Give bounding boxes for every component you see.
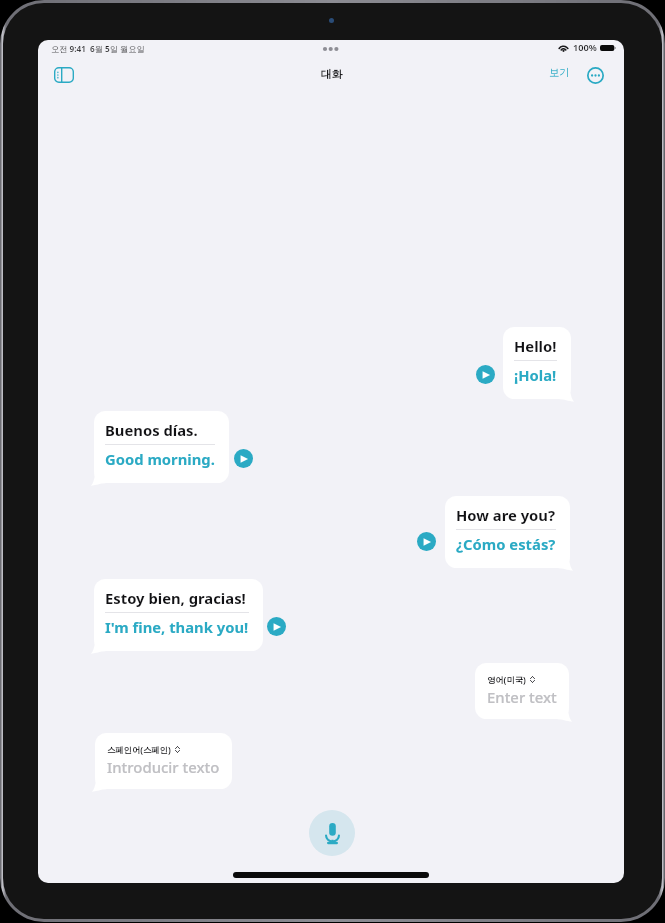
staticText: Buenos días.	[105, 420, 198, 440]
staticText: 보기	[549, 66, 570, 79]
staticText: I'm fine, thank you!	[105, 617, 249, 637]
button[interactable]: 보기	[544, 63, 575, 82]
button[interactable]: Play audio	[267, 617, 286, 636]
button[interactable]: Sidebar	[49, 62, 79, 88]
button[interactable]: 영어(미국)	[475, 663, 569, 719]
staticText: Enter text	[487, 687, 557, 707]
button[interactable]: Hello!	[503, 327, 571, 399]
staticText: ¿Cómo estás?	[456, 534, 556, 554]
staticText: 오전 9:41 6월 5일 월요일	[51, 43, 145, 54]
button[interactable]: Play audio	[234, 449, 253, 468]
button[interactable]: Buenos días.	[94, 411, 229, 483]
staticText: 100%	[573, 41, 597, 54]
staticText: How are you?	[456, 505, 556, 525]
button[interactable]: How are you?	[445, 496, 570, 568]
staticText: Hello!	[514, 336, 557, 356]
staticText: ¡Hola!	[514, 365, 557, 385]
staticText: Introducir texto	[107, 757, 220, 777]
button[interactable]: Play audio	[476, 365, 495, 384]
staticText: Estoy bien, gracias!	[105, 588, 246, 608]
button[interactable]: Microphone	[309, 810, 355, 856]
staticText: 영어(미국)	[487, 674, 526, 685]
button[interactable]: 스페인어(스페인)	[95, 733, 232, 789]
button[interactable]: Play audio	[417, 532, 436, 551]
button[interactable]: More options	[584, 64, 606, 86]
staticText: Good morning.	[105, 449, 215, 469]
staticText: 스페인어(스페인)	[107, 744, 171, 755]
staticText: 대화	[321, 68, 343, 82]
button[interactable]: Estoy bien, gracias!	[94, 579, 263, 651]
